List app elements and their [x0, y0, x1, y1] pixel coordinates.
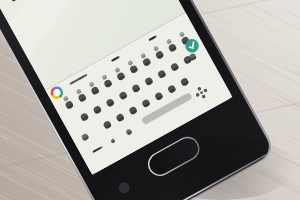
button[interactable]: Photo of a phone on a wooden table showi… [0, 0, 300, 200]
